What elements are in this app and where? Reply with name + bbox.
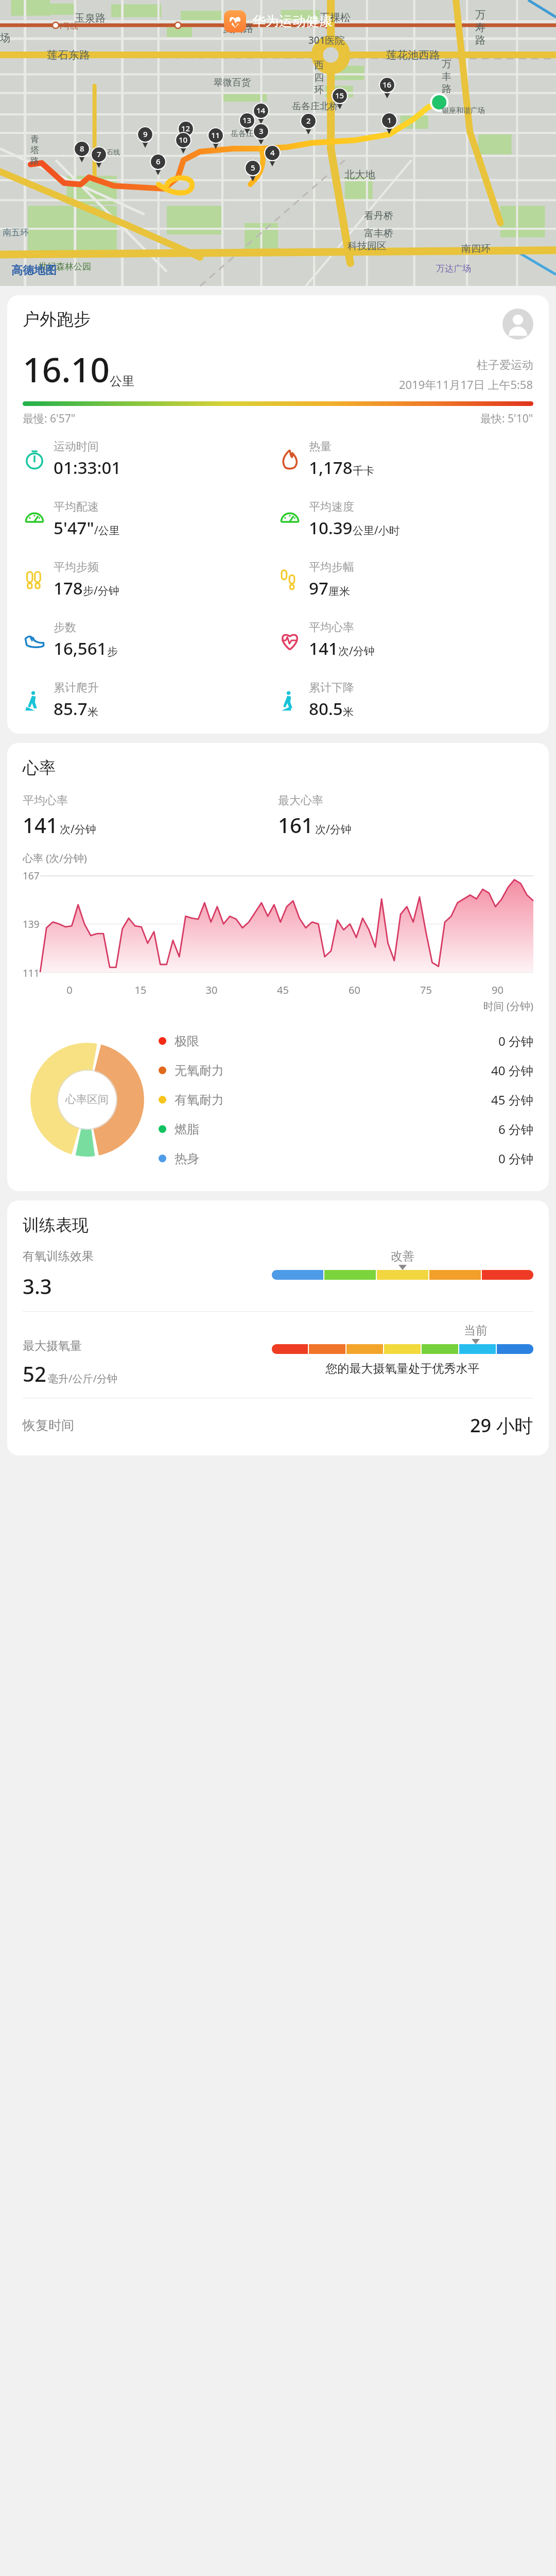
staticText: 0 分钟 [498, 1150, 533, 1167]
staticText: 岳各庄桥 [231, 129, 262, 139]
staticText: 平均步频 [54, 560, 99, 574]
staticText: 南五环 [3, 227, 29, 238]
button[interactable]: Profile [502, 309, 533, 340]
staticText: 复兴路 [222, 22, 253, 35]
staticText: 青 [30, 134, 39, 145]
staticText: 90 [462, 983, 533, 997]
button[interactable]: 有氧耐力 [159, 1091, 533, 1108]
staticText: 最大摄氧量 [23, 1338, 82, 1353]
staticText: 富丰桥 [364, 227, 393, 240]
staticText: 路 [30, 156, 39, 166]
button[interactable]: 平均步幅 [278, 560, 533, 600]
staticText: 万 [475, 8, 485, 21]
staticText: 301医院 [308, 33, 345, 47]
staticText: /公里 [94, 523, 120, 538]
button[interactable]: 户外跑步 [7, 295, 549, 734]
staticText: 次/分钟 [315, 822, 352, 837]
staticText: 改善 [391, 1249, 414, 1264]
staticText: 次/分钟 [60, 822, 96, 837]
button[interactable]: 步数 [23, 620, 278, 660]
staticText: 您的最大摄氧量处于优秀水平 [272, 1361, 533, 1376]
button[interactable]: 平均速度 [278, 500, 533, 539]
staticText: 步数 [54, 620, 76, 635]
button[interactable]: 平均步频 [23, 560, 278, 600]
staticText: 16,561 [54, 637, 107, 660]
staticText: 6 [156, 156, 161, 166]
staticText: 13 [242, 115, 252, 125]
staticText: 时间 (分钟) [23, 999, 533, 1013]
staticText: 139 [23, 918, 40, 931]
button[interactable]: 训练表现 [7, 1200, 549, 1455]
staticText: 岳各庄北桥 [292, 100, 338, 112]
staticText: 心率 [23, 757, 56, 778]
button[interactable]: 运动时间 [23, 439, 278, 479]
staticText: 路 [475, 34, 485, 47]
staticText: 30 [176, 983, 247, 997]
button[interactable]: 平均配速 [23, 500, 278, 539]
staticText: 丰 [442, 71, 451, 83]
staticText: 运动时间 [54, 439, 99, 454]
staticText: 路 [442, 83, 451, 95]
staticText: 178 [54, 577, 83, 600]
staticText: 52 [23, 1360, 46, 1387]
staticText: 75 [390, 983, 462, 997]
staticText: 平均配速 [54, 500, 99, 514]
staticText: 莲石东路 [47, 48, 90, 62]
staticText: 01:33:01 [54, 456, 121, 479]
staticText: 10.39 [309, 516, 353, 539]
staticText: 千卡 [353, 464, 374, 478]
staticText: 4 [270, 147, 275, 158]
staticText: 四 [314, 72, 324, 84]
staticText: 11 [211, 130, 220, 140]
button[interactable]: 燃脂 [159, 1121, 533, 1138]
button[interactable]: 极限 [159, 1032, 533, 1049]
staticText: 累计爬升 [54, 681, 99, 695]
staticText: 热身 [175, 1151, 498, 1166]
staticText: 恢复时间 [23, 1417, 470, 1433]
staticText: 12 [181, 123, 190, 133]
staticText: 14 [256, 105, 266, 115]
staticText: 80.5 [309, 697, 343, 720]
staticText: 步/分钟 [83, 583, 119, 598]
staticText: 平均心率 [23, 793, 68, 808]
staticText: 五棵松 [320, 11, 351, 24]
staticText: 看丹桥 [364, 210, 393, 222]
staticText: 厘米 [328, 585, 350, 598]
staticText: 1 [387, 115, 392, 125]
staticText: 心率 (次/分钟) [23, 851, 87, 865]
staticText: 步 [107, 645, 118, 658]
staticText: 燃脂 [175, 1122, 498, 1137]
staticText: 141 [309, 637, 338, 660]
button[interactable]: 热身 [159, 1150, 533, 1167]
staticText: 户外跑步 [23, 309, 502, 330]
staticText: 高德地图 [11, 263, 57, 278]
staticText: 45 分钟 [491, 1091, 533, 1108]
button[interactable]: 平均心率 [278, 620, 533, 660]
staticText: 毫升/公斤/分钟 [48, 1371, 117, 1385]
staticText: 5'47" [54, 516, 94, 539]
staticText: 万 [442, 58, 451, 71]
staticText: 平均心率 [309, 620, 354, 635]
button[interactable]: 累计爬升 [23, 681, 278, 720]
button[interactable]: 心率 [7, 743, 549, 1191]
staticText: 公里/小时 [353, 523, 400, 538]
staticText: 6 分钟 [498, 1121, 533, 1138]
staticText: 柱子爱运动 [477, 358, 533, 372]
staticText: 北大地 [344, 168, 375, 181]
staticText: 3.3 [23, 1272, 52, 1300]
staticText: 次/分钟 [338, 643, 375, 658]
staticText: 平均步幅 [309, 560, 354, 574]
staticText: 银座和谐广场 [442, 106, 485, 115]
staticText: 60 [319, 983, 390, 997]
staticText: 极限 [175, 1033, 498, 1049]
staticText: 7 [97, 149, 101, 159]
button[interactable]: 无氧耐力 [159, 1062, 533, 1079]
button[interactable]: 热量 [278, 439, 533, 479]
staticText: 莲花池西路 [386, 48, 440, 62]
button[interactable]: 累计下降 [278, 681, 533, 720]
staticText: 16.10 [23, 346, 110, 392]
staticText: 有氧耐力 [175, 1092, 491, 1108]
staticText: 西 [314, 59, 324, 72]
staticText: 无氧耐力 [175, 1063, 491, 1078]
staticText: 京石线 [100, 148, 120, 156]
